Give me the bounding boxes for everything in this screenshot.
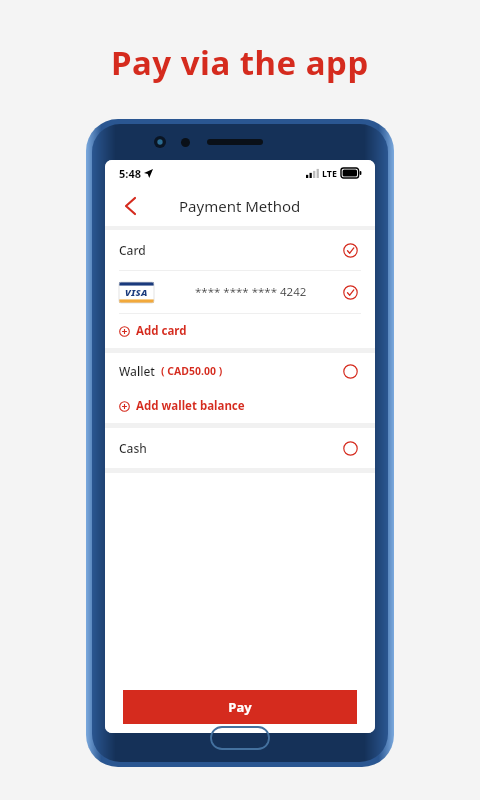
button[interactable]: Home bbox=[211, 727, 269, 749]
staticText: **** **** **** 4242 bbox=[195, 284, 307, 300]
button[interactable]: Not selected bbox=[339, 360, 361, 382]
staticText: Cash bbox=[119, 440, 147, 456]
staticText: VISA bbox=[125, 286, 148, 299]
staticText: Add card bbox=[136, 323, 187, 339]
button[interactable]: Card bbox=[105, 230, 375, 270]
button[interactable]: Cash bbox=[105, 428, 375, 468]
staticText: ( CAD50.00 ) bbox=[161, 364, 223, 378]
button[interactable]: Selected bbox=[339, 281, 361, 303]
staticText: LTE bbox=[322, 167, 338, 179]
button[interactable]: Wallet bbox=[105, 353, 375, 389]
staticText: 5:48 bbox=[119, 166, 141, 181]
button[interactable]: Add card bbox=[105, 314, 375, 348]
button[interactable]: Not selected bbox=[339, 437, 361, 459]
staticText: Pay bbox=[228, 698, 252, 716]
staticText: Payment Method bbox=[179, 196, 301, 216]
button[interactable]: Pay bbox=[123, 690, 357, 724]
staticText: Pay via the app bbox=[111, 40, 369, 85]
staticText: Add wallet balance bbox=[136, 398, 245, 414]
button[interactable]: VISA bbox=[105, 271, 375, 313]
staticText: Card bbox=[119, 242, 146, 258]
button[interactable]: Selected bbox=[339, 239, 361, 261]
staticText: Wallet bbox=[119, 363, 155, 379]
button[interactable]: Add wallet balance bbox=[105, 389, 375, 423]
button[interactable]: Back bbox=[113, 189, 147, 223]
